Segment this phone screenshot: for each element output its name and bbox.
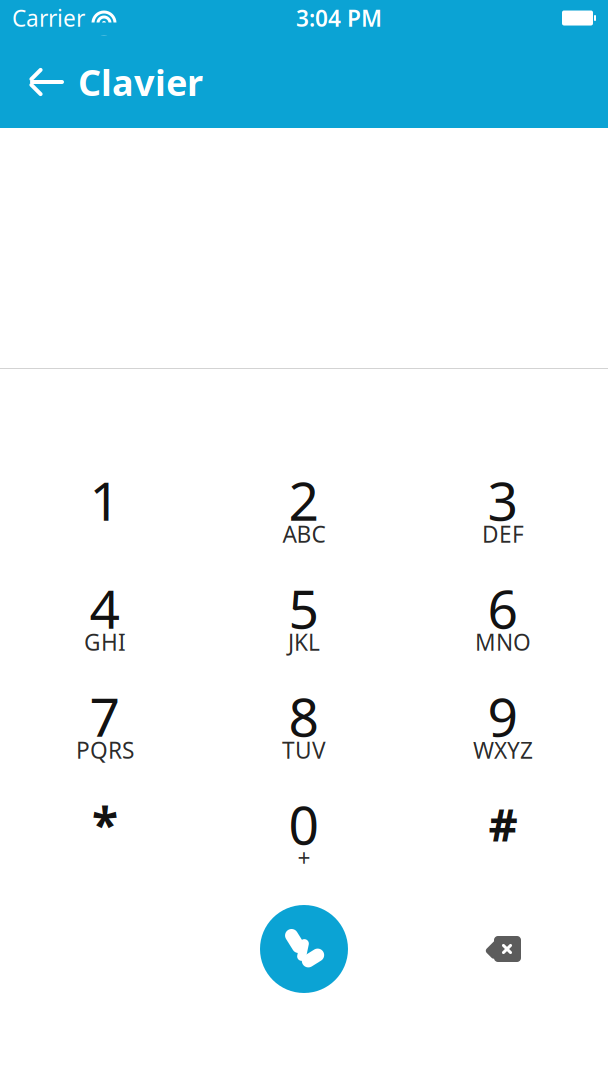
button[interactable]: Back xyxy=(16,52,78,112)
staticText: WXYZ xyxy=(473,735,533,765)
button[interactable]: Delete xyxy=(456,903,548,995)
button[interactable]: * xyxy=(30,789,180,881)
staticText: # xyxy=(488,794,517,854)
staticText: 8 xyxy=(288,681,319,751)
staticText: 0 xyxy=(288,789,319,859)
button[interactable]: 0 xyxy=(229,789,379,881)
staticText: MNO xyxy=(475,627,531,657)
button[interactable]: 8 xyxy=(229,681,379,773)
staticText: Carrier xyxy=(12,3,85,33)
staticText: 4 xyxy=(89,573,120,643)
staticText: TUV xyxy=(282,735,326,765)
staticText: DEF xyxy=(482,519,524,549)
staticText: 5 xyxy=(288,573,319,643)
button[interactable]: 9 xyxy=(428,681,578,773)
button[interactable]: 2 xyxy=(229,465,379,557)
staticText: 3:04 PM xyxy=(296,3,382,33)
staticText: 9 xyxy=(487,681,518,751)
staticText: GHI xyxy=(84,627,126,657)
staticText: 1 xyxy=(89,465,120,535)
staticText: 3 xyxy=(487,465,518,535)
button[interactable]: Call xyxy=(258,903,350,995)
staticText: Clavier xyxy=(78,58,203,106)
staticText: JKL xyxy=(288,627,320,657)
staticText: + xyxy=(297,843,310,873)
staticText: 7 xyxy=(89,681,120,751)
staticText: * xyxy=(92,792,118,856)
staticText: 6 xyxy=(487,573,518,643)
staticText: PQRS xyxy=(76,735,134,765)
button[interactable]: 1 xyxy=(30,465,180,557)
button[interactable]: 7 xyxy=(30,681,180,773)
button[interactable]: 4 xyxy=(30,573,180,665)
staticText: ABC xyxy=(282,519,325,549)
button[interactable]: # xyxy=(428,789,578,881)
button[interactable]: 5 xyxy=(229,573,379,665)
button[interactable]: 3 xyxy=(428,465,578,557)
button[interactable]: 6 xyxy=(428,573,578,665)
staticText: 2 xyxy=(288,465,319,535)
